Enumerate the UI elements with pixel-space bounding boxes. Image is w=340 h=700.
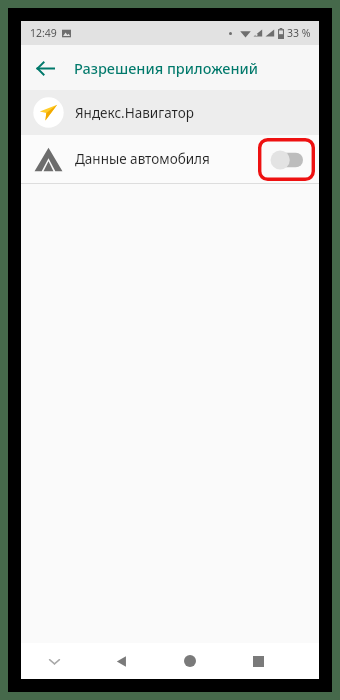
- button[interactable]: Главный экран: [155, 643, 224, 679]
- staticText: Данные автомобиля: [75, 150, 210, 168]
- button[interactable]: Яндекс.Навигатор: [21, 90, 319, 135]
- staticText: Разрешения приложений: [74, 58, 259, 78]
- button[interactable]: Свернуть: [21, 643, 87, 679]
- button[interactable]: Недавние приложения: [224, 643, 293, 679]
- button[interactable]: Данные автомобиля переключатель: [267, 147, 307, 173]
- staticText: 12:49: [30, 26, 57, 40]
- button[interactable]: Данные автомобиля: [21, 135, 319, 183]
- staticText: 33 %: [287, 26, 311, 40]
- button[interactable]: Назад: [27, 50, 63, 86]
- staticText: Яндекс.Навигатор: [75, 104, 194, 122]
- button[interactable]: Назад: [87, 643, 155, 679]
